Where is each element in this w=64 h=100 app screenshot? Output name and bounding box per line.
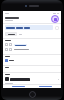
button[interactable] (32, 85, 59, 88)
button[interactable]: Add (51, 15, 59, 23)
button[interactable]: Home (29, 91, 36, 98)
button[interactable] (5, 59, 59, 62)
button[interactable]: More options (55, 26, 59, 30)
button[interactable] (5, 77, 59, 81)
button[interactable] (5, 85, 32, 88)
button[interactable] (5, 48, 59, 51)
button[interactable]: More options (5, 25, 59, 30)
button[interactable] (5, 43, 59, 46)
button[interactable] (5, 32, 17, 36)
